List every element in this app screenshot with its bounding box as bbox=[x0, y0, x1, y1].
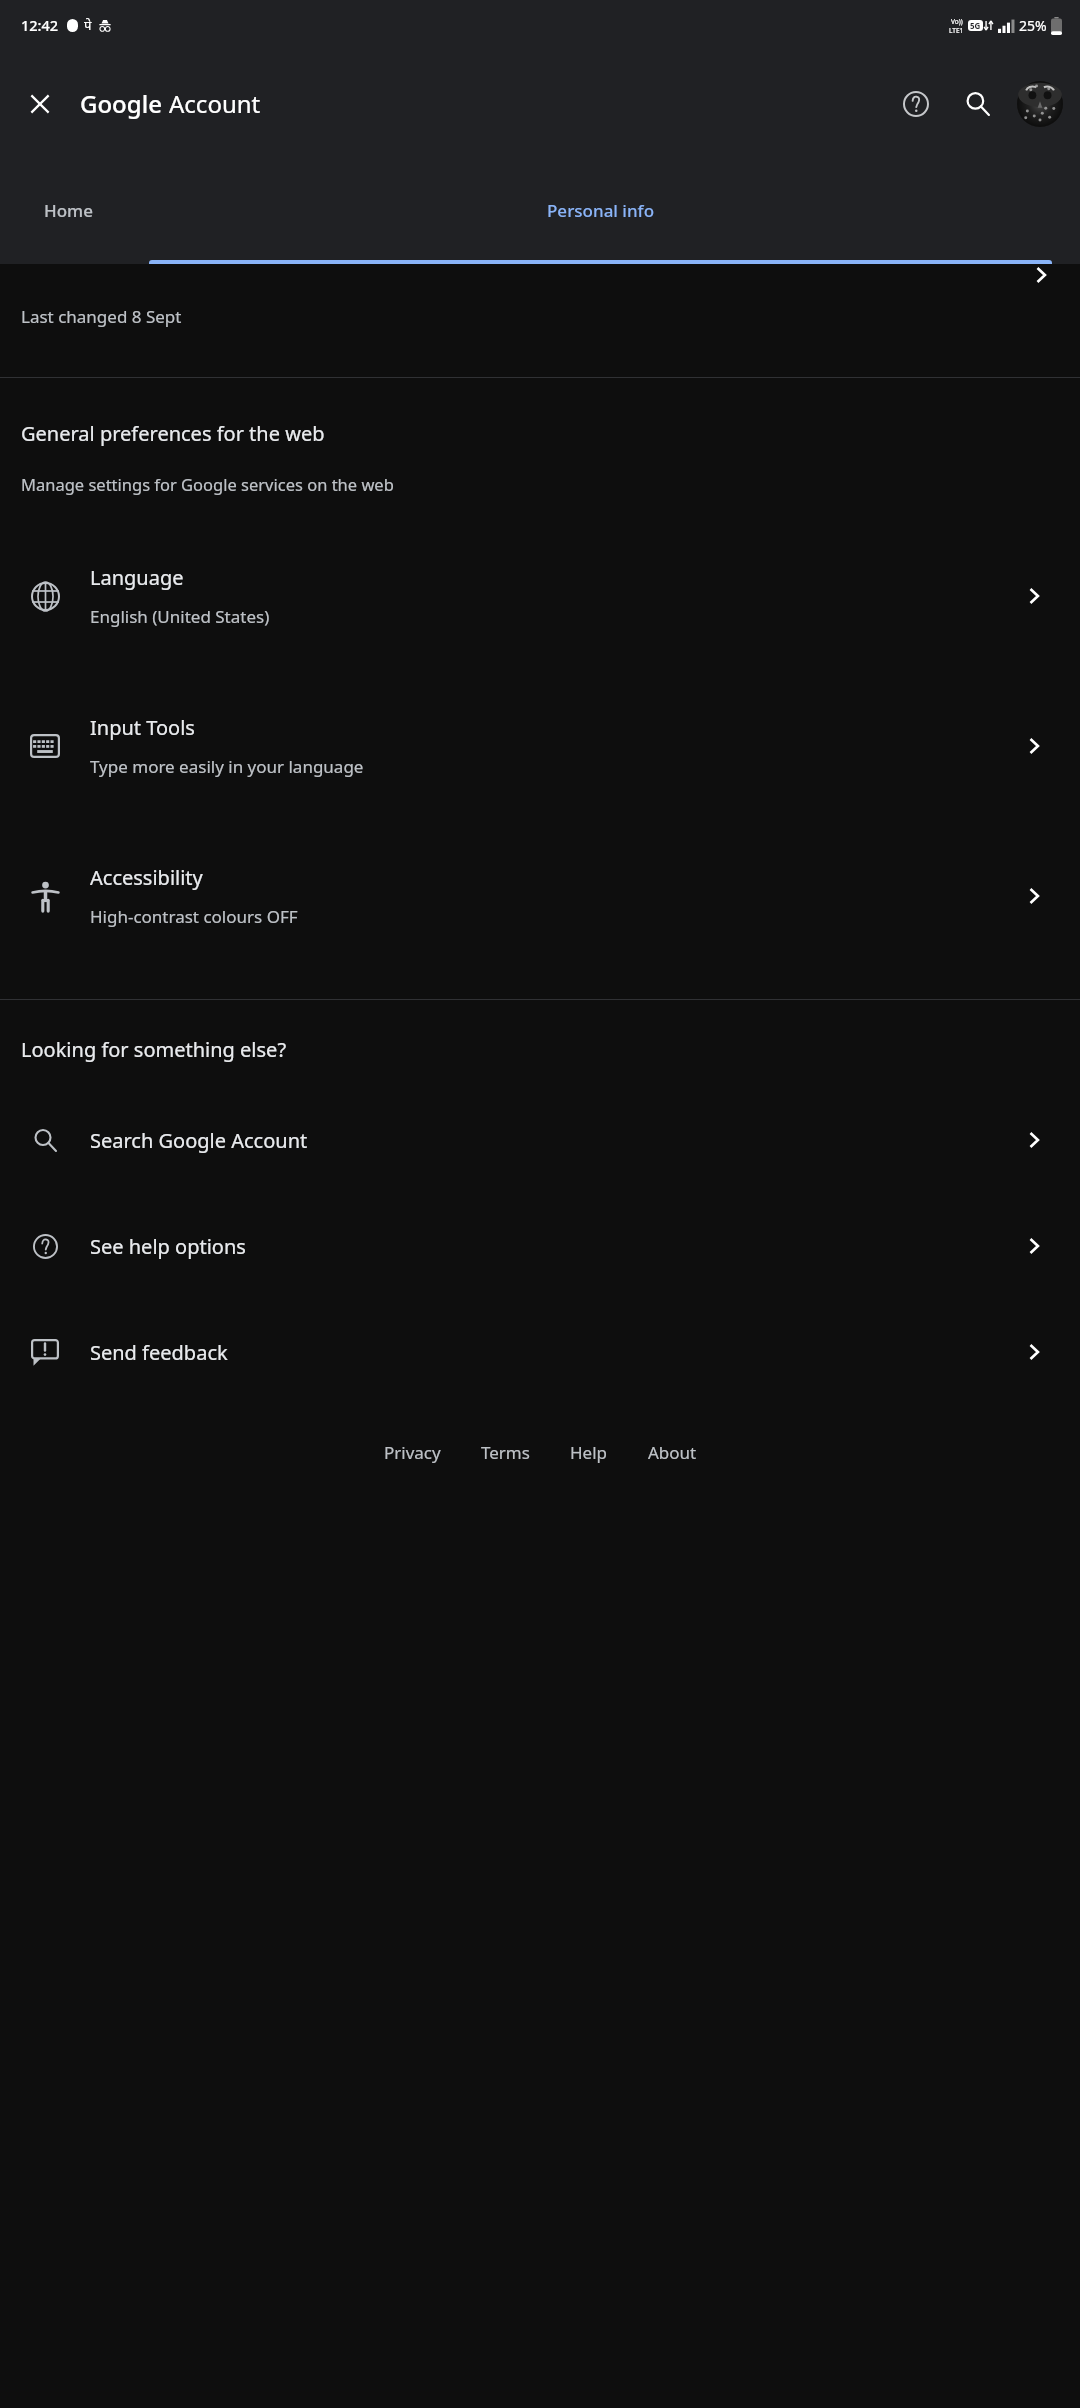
button[interactable]: Search bbox=[952, 78, 1004, 130]
button[interactable]: Last changed 8 Sept bbox=[0, 264, 1080, 377]
staticText: Manage settings for Google services on t… bbox=[21, 473, 394, 495]
button[interactable]: Terms bbox=[475, 1435, 536, 1470]
staticText: Home bbox=[44, 199, 93, 222]
button[interactable]: Help bbox=[890, 78, 942, 130]
staticText: Help bbox=[570, 1441, 608, 1464]
staticText: Looking for something else? bbox=[21, 1036, 287, 1063]
staticText: High-contrast colours OFF bbox=[90, 905, 298, 928]
staticText: Personal info bbox=[547, 199, 655, 222]
staticText: LTE1 bbox=[949, 26, 964, 35]
staticText: Last changed 8 Sept bbox=[21, 305, 182, 328]
button[interactable]: Personal info bbox=[121, 157, 1080, 264]
staticText: Input Tools bbox=[90, 714, 195, 741]
staticText: Send feedback bbox=[90, 1339, 988, 1366]
button[interactable]: Send feedback bbox=[0, 1299, 1080, 1405]
staticText: 5G bbox=[970, 20, 981, 31]
button[interactable]: Search Google Account bbox=[0, 1087, 1080, 1193]
staticText: See help options bbox=[90, 1233, 988, 1260]
staticText: Google bbox=[80, 87, 162, 120]
button[interactable]: Help bbox=[564, 1435, 614, 1470]
staticText: 25% bbox=[1019, 16, 1047, 35]
staticText: पे bbox=[84, 16, 92, 34]
button[interactable]: Home bbox=[0, 157, 121, 264]
button[interactable]: Account profile bbox=[1014, 78, 1066, 130]
button[interactable]: About bbox=[642, 1435, 703, 1470]
button[interactable]: See help options bbox=[0, 1193, 1080, 1299]
staticText: English (United States) bbox=[90, 605, 270, 628]
staticText: Search Google Account bbox=[90, 1127, 988, 1154]
button[interactable]: Close bbox=[14, 78, 66, 130]
staticText: About bbox=[648, 1441, 697, 1464]
staticText: Type more easily in your language bbox=[90, 755, 364, 778]
staticText: Accessibility bbox=[90, 864, 203, 891]
button[interactable]: Input Tools bbox=[0, 671, 1080, 821]
staticText: Terms bbox=[481, 1441, 530, 1464]
button[interactable]: Privacy bbox=[378, 1435, 447, 1470]
staticText: Privacy bbox=[384, 1441, 441, 1464]
staticText: General preferences for the web bbox=[21, 420, 325, 447]
button[interactable]: Accessibility bbox=[0, 821, 1080, 971]
button[interactable]: Language bbox=[0, 521, 1080, 671]
staticText: Account bbox=[169, 87, 261, 120]
staticText: Vo)) bbox=[951, 17, 963, 26]
staticText: 12:42 bbox=[21, 15, 59, 35]
staticText: Language bbox=[90, 564, 184, 591]
